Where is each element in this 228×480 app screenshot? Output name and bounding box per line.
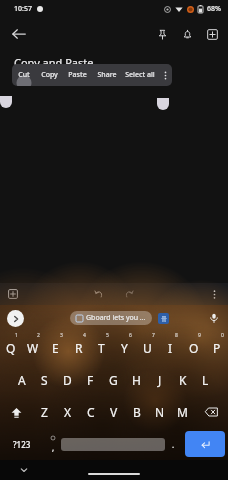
staticText: 冊 [161,315,167,323]
staticText: Q [6,340,16,356]
staticText: Gboard lets you … [86,313,146,323]
staticText: X [64,404,72,420]
button[interactable]: Add image [4,285,22,303]
staticText: O [189,340,199,356]
staticText: Z [41,404,48,420]
button[interactable]: L [194,364,217,396]
staticText: G [109,372,118,388]
staticText: D [63,372,72,388]
button[interactable]: Back [6,21,32,47]
staticText: 9 [198,332,201,339]
button[interactable]: , [44,428,61,460]
button[interactable]: Space [61,438,165,451]
button[interactable]: E [44,331,67,364]
staticText: Y [121,340,128,356]
button[interactable]: Cut [12,64,36,86]
staticText: A [18,372,26,388]
staticText: V [110,404,118,420]
button[interactable]: K [171,364,194,396]
staticText: H [132,372,141,388]
button[interactable]: Redo [121,286,137,302]
staticText: 1 [15,332,18,339]
button[interactable]: Reminder [175,22,200,47]
button[interactable]: U [136,331,159,364]
staticText: 68% [207,4,221,14]
staticText: N [155,404,165,420]
button[interactable]: . [165,428,182,460]
staticText: U [143,340,152,356]
button[interactable]: Undo [91,286,107,302]
staticText: 2 [37,332,40,339]
button[interactable]: F [79,364,102,396]
button[interactable]: I [159,331,182,364]
button[interactable]: Translate [158,313,169,324]
button[interactable]: Z [33,396,56,428]
staticText: T [98,340,105,356]
staticText: R [75,340,83,356]
button[interactable]: C [79,396,102,428]
button[interactable]: J [148,364,171,396]
staticText: L [202,372,209,388]
button[interactable]: More options [159,64,172,86]
staticText: 5 [106,332,109,339]
button[interactable]: G [102,364,125,396]
staticText: B [133,404,141,420]
staticText: 10:57 [14,4,32,14]
staticText: F [87,372,94,388]
button[interactable]: More [205,285,223,303]
staticText: 0 [221,332,224,339]
staticText: Copy and Paste [14,55,94,70]
button[interactable]: H [125,364,148,396]
staticText: 4 [83,332,86,339]
button[interactable]: Hide keyboard [17,463,31,477]
button[interactable]: A [10,364,33,396]
staticText: I [168,340,173,356]
button[interactable]: ?123 [0,428,44,460]
button[interactable]: Share [92,64,121,86]
button[interactable]: M [171,396,194,428]
staticText: Copy [41,70,58,80]
button[interactable]: O [182,331,205,364]
staticText: 3 [60,332,63,339]
staticText: ?123 [13,439,31,450]
button[interactable]: Archive [200,22,225,47]
button[interactable]: Select all [121,64,159,86]
staticText: S [41,372,48,388]
staticText: Share [97,70,117,80]
staticText: . [172,439,175,450]
button[interactable]: D [56,364,79,396]
button[interactable]: V [102,396,125,428]
button[interactable]: R [67,331,90,364]
button[interactable]: P [205,331,228,364]
staticText: M [177,404,188,420]
staticText: 6 [129,332,132,339]
staticText: J [158,372,162,388]
staticText: Select all [125,70,155,80]
staticText: 7 [152,332,155,339]
button[interactable]: Enter [185,431,225,457]
staticText: W [27,340,39,356]
button[interactable]: Backspace [194,396,228,428]
button[interactable]: Paste [63,64,92,86]
staticText: P [213,340,221,356]
button[interactable]: B [125,396,148,428]
button[interactable]: T [90,331,113,364]
button[interactable]: Y [113,331,136,364]
button[interactable]: S [33,364,56,396]
button[interactable]: Gboard lets you … [76,313,146,323]
staticText: Cut [18,70,30,80]
staticText: E [52,340,59,356]
staticText: Paste [68,70,87,80]
button[interactable]: Expand toolbar [7,310,24,327]
button[interactable]: Voice input [206,310,222,326]
button[interactable]: Q [0,331,22,364]
button[interactable]: Shift [0,396,33,428]
staticText: K [179,372,187,388]
button[interactable]: W [22,331,44,364]
button[interactable]: X [56,396,79,428]
button[interactable]: Copy [36,64,63,86]
staticText: , [52,442,55,453]
staticText: C [87,404,95,420]
button[interactable]: Pin [150,22,175,47]
button[interactable]: N [148,396,171,428]
